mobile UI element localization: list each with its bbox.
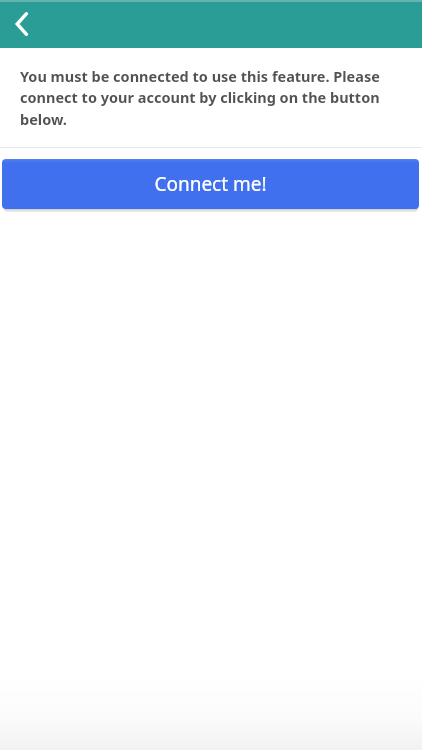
- button[interactable]: Connect me!: [2, 159, 419, 209]
- staticText: Connect me!: [154, 171, 267, 197]
- button[interactable]: Back: [2, 4, 42, 44]
- staticText: You must be connected to use this featur…: [20, 66, 404, 130]
